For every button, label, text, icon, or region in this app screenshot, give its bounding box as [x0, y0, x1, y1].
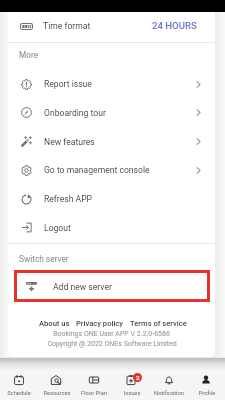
button[interactable] — [17, 274, 205, 298]
staticText: Onboarding tour — [44, 108, 106, 118]
button[interactable] — [150, 369, 188, 400]
staticText: Floor Plan — [75, 390, 113, 397]
staticText: Go to management console — [44, 165, 150, 175]
button[interactable]: New features — [8, 125, 215, 154]
staticText: Bookings ONE User APP V 2.2.0-6586 — [53, 330, 170, 338]
staticText: Issues — [113, 390, 151, 397]
button[interactable] — [113, 369, 151, 400]
button[interactable] — [188, 369, 225, 400]
staticText: 2 — [136, 374, 140, 381]
staticText: Report issue — [44, 79, 92, 89]
staticText: 24 HOURS — [152, 20, 197, 31]
staticText: More — [19, 50, 39, 60]
button[interactable]: Logout — [8, 211, 215, 240]
staticText: Refresh APP — [44, 194, 92, 204]
button[interactable]: Report issue — [8, 67, 215, 96]
staticText: Notification — [150, 390, 188, 397]
button[interactable]: Terms of service — [130, 319, 187, 328]
button[interactable] — [75, 369, 113, 400]
button[interactable]: About us — [39, 319, 70, 328]
staticText: Logout — [44, 223, 71, 233]
button[interactable]: Refresh app — [8, 182, 215, 211]
staticText: Copyright @ 2022 ONEs Software Limited — [47, 340, 177, 348]
staticText: Add new server — [53, 282, 112, 292]
staticText: Time format — [43, 21, 91, 31]
staticText: Profile — [188, 390, 225, 397]
button[interactable] — [8, 14, 215, 41]
staticText: Schedule — [0, 390, 38, 397]
button[interactable] — [38, 369, 76, 400]
staticText: New features — [44, 137, 95, 147]
button[interactable]: Privacy policy — [76, 319, 124, 328]
staticText: Resources — [38, 390, 76, 397]
button[interactable] — [0, 369, 38, 400]
button[interactable]: Management console — [8, 153, 215, 182]
staticText: Switch server — [19, 254, 69, 264]
button[interactable]: Onboarding tour — [8, 96, 215, 125]
